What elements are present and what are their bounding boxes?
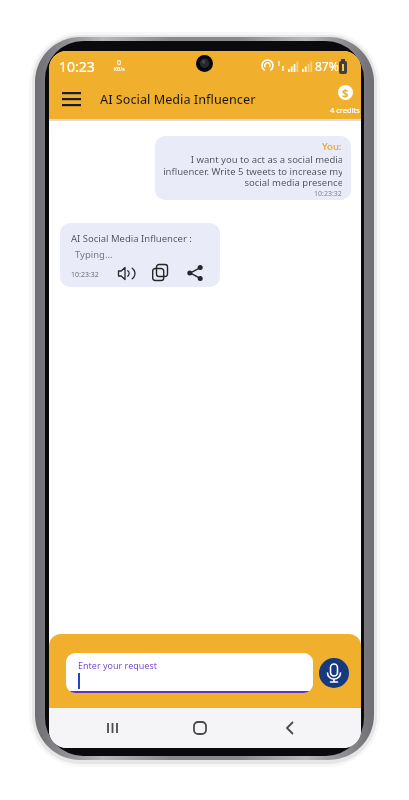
button[interactable]: Enter your request	[66, 653, 313, 693]
staticText: 10:23:32	[314, 189, 342, 199]
staticText: 0	[117, 58, 122, 68]
staticText: Typing...	[75, 248, 113, 261]
button[interactable]	[152, 264, 169, 282]
staticText: $	[342, 85, 349, 100]
staticText: AI Social Media Influencer :	[71, 232, 192, 245]
staticText: KB/s	[114, 66, 125, 73]
button[interactable]: $	[330, 85, 360, 115]
button[interactable]	[101, 716, 125, 740]
button[interactable]	[187, 265, 204, 281]
button[interactable]	[188, 716, 212, 740]
button[interactable]	[278, 716, 302, 740]
staticText: 10:23:32	[71, 270, 99, 280]
staticText: 10:23	[59, 57, 95, 76]
staticText: AI Social Media Influencer	[100, 91, 256, 108]
button[interactable]	[62, 92, 81, 107]
button[interactable]	[118, 266, 135, 281]
staticText: Enter your request	[78, 659, 157, 671]
button[interactable]	[319, 658, 349, 688]
staticText: 4 credits	[330, 105, 360, 115]
staticText: I want you to act as a social media infl…	[163, 153, 342, 189]
staticText: You:	[322, 140, 342, 153]
staticText: 87%	[315, 58, 339, 74]
